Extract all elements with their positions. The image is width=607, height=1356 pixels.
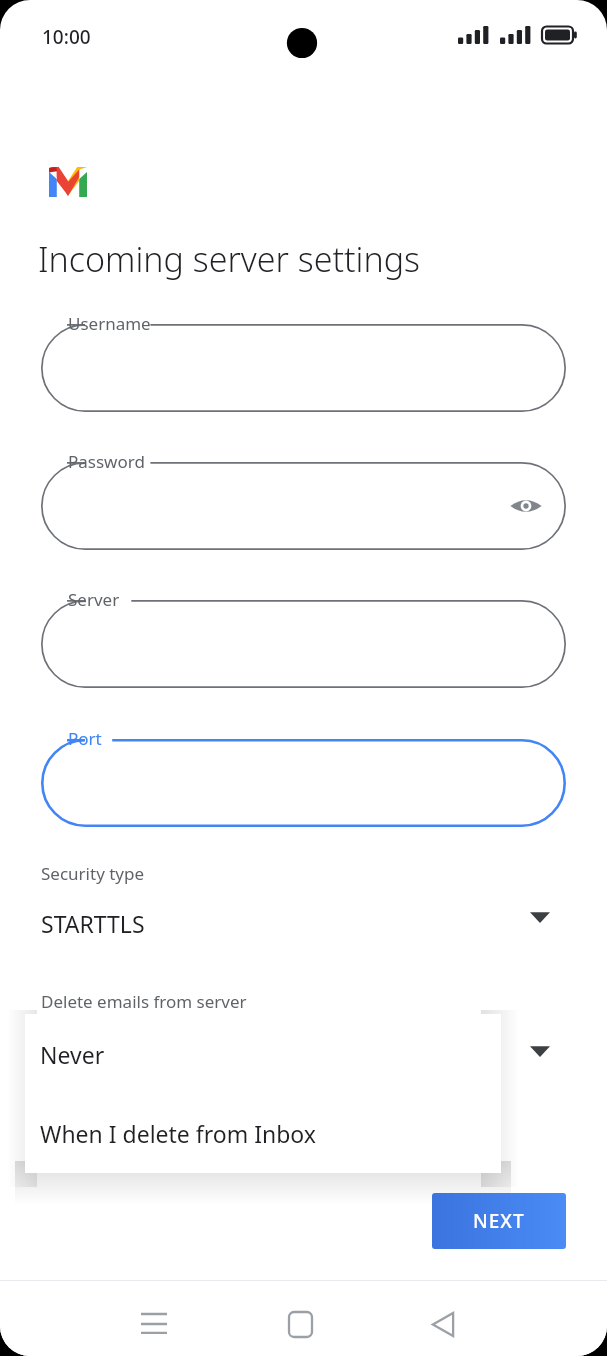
staticText: Server [68, 588, 120, 611]
button[interactable] [41, 600, 566, 688]
button[interactable]: NEXT [432, 1193, 566, 1249]
staticText: When I delete from Inbox [40, 1118, 316, 1149]
button[interactable]: Show password [504, 484, 548, 528]
staticText: 10:00 [42, 24, 91, 50]
button[interactable] [41, 324, 566, 412]
button[interactable]: Show password [41, 462, 566, 550]
staticText: STARTTLS [41, 908, 145, 939]
staticText: Never [40, 1039, 105, 1070]
button[interactable]: Security type [41, 858, 566, 950]
staticText: Security type [41, 862, 145, 885]
staticText: Password [68, 450, 145, 473]
staticText: Incoming server settings [38, 236, 420, 282]
staticText: Port [68, 727, 102, 750]
button[interactable]: Home [270, 1294, 330, 1354]
button[interactable]: Back [413, 1294, 473, 1354]
staticText: NEXT [473, 1208, 525, 1234]
button[interactable]: Never [25, 1014, 501, 1094]
staticText: Username [68, 312, 151, 335]
button[interactable]: When I delete from Inbox [25, 1094, 501, 1173]
staticText: Delete emails from server [41, 990, 247, 1013]
button[interactable] [41, 739, 566, 827]
button[interactable]: Recent apps [124, 1294, 184, 1354]
